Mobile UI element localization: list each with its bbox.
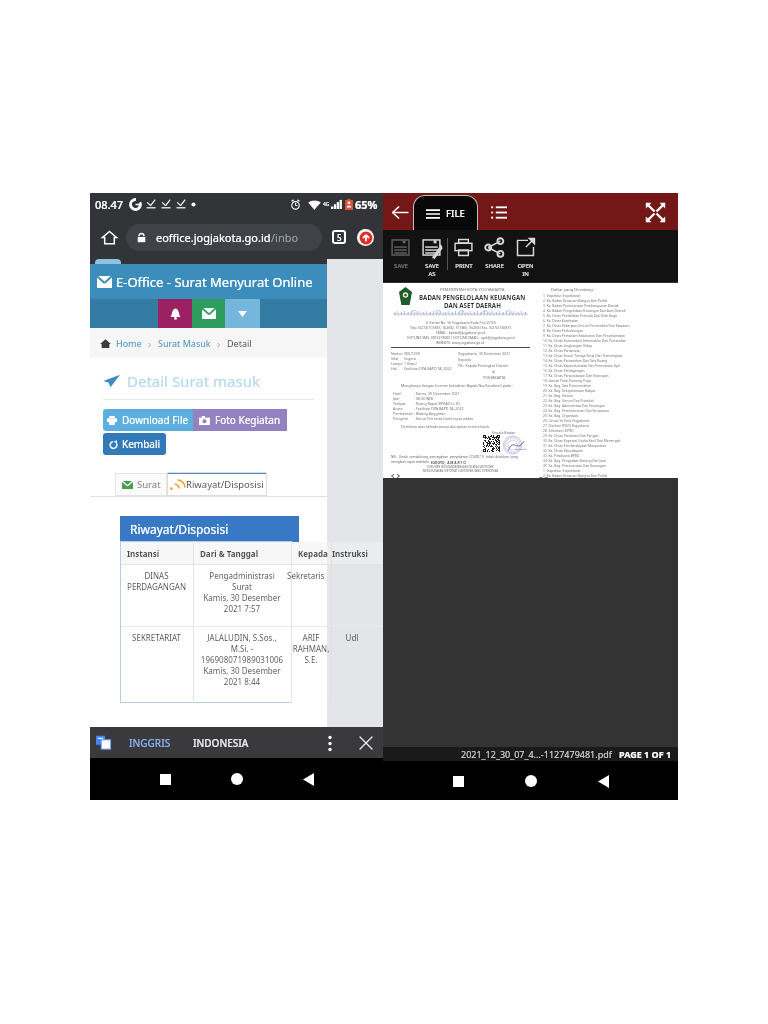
- staticText: 28. Sekretaris DPRD: [543, 428, 574, 432]
- staticText: di: [492, 369, 496, 374]
- staticText: 65%: [355, 197, 378, 212]
- staticText: 3. Ka. Badan Perencanaan Pembangunan Dae…: [543, 303, 620, 307]
- staticText: 1 (Satu): [404, 361, 417, 366]
- staticText: Detail Surat masuk: [127, 371, 260, 391]
- staticText: Instruksi: [332, 548, 368, 559]
- button[interactable]: Recent apps: [151, 765, 179, 793]
- staticText: ›: [148, 336, 152, 351]
- button[interactable]: Notifications: [158, 299, 192, 328]
- staticText: 1. Inspektur Inspektorat: [543, 293, 581, 297]
- staticText: 15. Ka. Dinas Kependudukan Dan Pencatata…: [543, 363, 621, 367]
- staticText: 24. Ka. Bag. Perekonomian Dan Kerjasama: [543, 408, 609, 412]
- staticText: Kembali: [122, 437, 161, 451]
- staticText: 08.47: [95, 197, 124, 212]
- staticText: HOTLINE SMS: 08122780001 HOTLINE EMAIL :…: [407, 335, 515, 340]
- button[interactable]: FILE: [414, 196, 477, 230]
- button[interactable]: Back: [387, 199, 413, 225]
- staticText: Foto Kegiatan: [215, 413, 281, 427]
- staticText: Download File: [122, 413, 189, 427]
- staticText: mengikuti rapat melebihi: [391, 460, 429, 464]
- staticText: NB : Untuk mendukung pencegahan penyebar…: [391, 455, 518, 459]
- staticText: 11. Ka. Dinas Lingkungan Hidup: [543, 343, 593, 347]
- staticText: : Ketua Tim serta hadir tepat waktu: [414, 416, 474, 421]
- staticText: 18. Satuan Polisi Pamong Praja: [543, 378, 591, 382]
- staticText: 19. Ka. Bag. Tata Pemerintahan: [543, 383, 592, 387]
- button[interactable]: Update available: [353, 225, 377, 249]
- staticText: 12. Ka. Dinas Pariwisata: [543, 348, 580, 352]
- staticText: 27. Direktur RSUD Yogyakarta: [543, 423, 589, 427]
- staticText: 7. Ka. Dinas Pekerjaan Umum Perumahan Da…: [543, 323, 630, 327]
- staticText: Detail: [227, 337, 252, 349]
- button[interactable]: Home: [96, 224, 122, 250]
- staticText: : Kamis, 30 Desember 2021: [414, 391, 460, 396]
- staticText: Demikian atas kehadirannya diucapkan ter…: [401, 424, 491, 429]
- staticText: 30. Ka. Dinas Koperasi Usaha Kecil Dan M…: [543, 438, 621, 442]
- button[interactable]: More options: [319, 732, 341, 754]
- staticText: Kepada: [298, 548, 328, 559]
- staticText: Lampiran: [391, 361, 404, 366]
- button[interactable]: Home: [223, 765, 251, 793]
- button[interactable]: Messages: [192, 299, 225, 328]
- staticText: 16. Ka. Dinas Perdagangan: [543, 368, 585, 372]
- button[interactable]: Foto Kegiatan: [193, 409, 287, 431]
- button[interactable]: SAVE: [385, 230, 416, 270]
- staticText: 20. Ka. Bag. Kesejahteraan Rakyat: [543, 388, 596, 392]
- staticText: Riwayat/Disposisi: [186, 478, 264, 491]
- button[interactable]: Download File: [103, 409, 193, 431]
- button[interactable]: Close: [355, 732, 377, 754]
- staticText: 21. Ka. Bag. Hukum: [543, 393, 574, 397]
- staticText: Riwayat/Disposisi: [130, 521, 229, 537]
- staticText: SEKRETARIAT: [120, 632, 193, 643]
- staticText: INGGRIS: [129, 736, 171, 750]
- staticText: Udl: [331, 632, 373, 643]
- staticText: 5: [337, 232, 342, 243]
- button[interactable]: Home: [116, 337, 142, 349]
- staticText: 14. Ka. Dinas Pertanahan Dan Tata Ruang: [543, 358, 608, 362]
- staticText: 32. Ka. Dinas Kebudayaan: [543, 448, 583, 452]
- staticText: Yogyakarta, 30 Desember 2021: [458, 351, 511, 356]
- staticText: Hari/Tanggal: [393, 391, 414, 396]
- staticText: PRINT: [455, 262, 473, 270]
- staticText: Kepala Badan: [492, 430, 516, 435]
- button[interactable]: Fullscreen: [640, 197, 670, 227]
- button[interactable]: Back: [589, 767, 617, 795]
- button[interactable]: INDONESIA: [190, 731, 252, 755]
- staticText: MENGGUNAKAN SERTIFIKAT ELEKTRONIK YANG D…: [423, 469, 499, 473]
- staticText: DINAS PERDAGANGAN: [120, 570, 193, 592]
- button[interactable]: Tabs: [327, 225, 351, 249]
- staticText: Kepada: [458, 357, 471, 362]
- button[interactable]: INGGRIS: [126, 731, 174, 755]
- button[interactable]: Surat Masuk: [158, 337, 211, 349]
- button[interactable]: SHARE: [479, 230, 510, 270]
- staticText: : Fasilitasi DPA BAPD TA. 2022: [414, 406, 464, 411]
- staticText: 4G: [323, 201, 330, 208]
- button[interactable]: Recent apps: [444, 767, 472, 795]
- button[interactable]: Kembali: [103, 433, 166, 455]
- staticText: 26. Camat Se-Kota Yogyakarta: [543, 418, 590, 422]
- button[interactable]: Home: [517, 767, 545, 795]
- button[interactable]: eoffice.jogjakota.go.id: [126, 224, 322, 251]
- staticText: 13. Ka. Dinas Sosial, Tenaga Kerja Dan T…: [543, 353, 623, 357]
- staticText: Sekretaris: [287, 570, 335, 581]
- staticText: : Bidang Anggaran: [414, 411, 446, 416]
- button[interactable]: More: [225, 299, 260, 328]
- button[interactable]: Surat: [115, 473, 167, 496]
- button[interactable]: Back: [294, 765, 322, 793]
- staticText: Telp. (0274) 515865, 562682, 515866, 562…: [410, 325, 512, 330]
- button[interactable]: Outline: [486, 199, 512, 225]
- button[interactable]: SAVE AS: [416, 230, 447, 278]
- button[interactable]: OPEN IN: [510, 230, 541, 278]
- staticText: 1. Inspektur Inspektorat: [543, 468, 581, 472]
- staticText: Jl. Kenari No. 56 Yogyakarta Kode Pos 55…: [426, 320, 496, 325]
- button[interactable]: PRINT: [448, 230, 479, 270]
- staticText: Hal: [391, 366, 397, 371]
- button[interactable]: Riwayat/Disposisi: [167, 472, 267, 496]
- staticText: 6. Ka. Dinas Kesehatan: [543, 318, 579, 322]
- staticText: 4. Ka. Badan Pengelolaan Keuangan Dan As…: [543, 308, 626, 312]
- staticText: Acara: [393, 406, 403, 411]
- staticText: 2. Ka. Badan Kesatuan Bangsa Dan Politik: [543, 298, 608, 302]
- staticText: DAN ASET DAERAH: [444, 301, 501, 309]
- staticText: 2021_12_30_07_4...-1127479481.pdf: [461, 748, 612, 760]
- staticText: 25. Ka. Bag. Organisasi: [543, 413, 579, 417]
